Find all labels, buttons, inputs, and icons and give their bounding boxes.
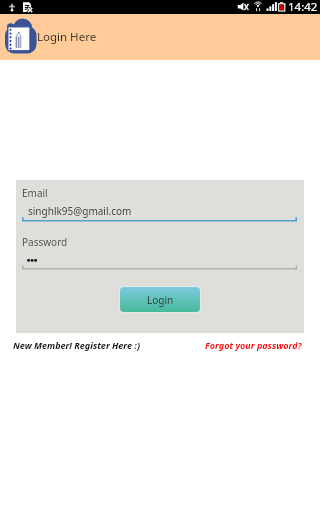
staticText: Login <box>147 293 174 307</box>
staticText: Password <box>22 235 68 249</box>
staticText: New Member! Register Here :) <box>13 339 140 351</box>
button[interactable]: New Member! Register Here :) <box>13 339 140 351</box>
staticText: 14:42 <box>288 0 318 13</box>
staticText: Forgot your password? <box>205 339 302 351</box>
other: App icon <box>5 18 38 58</box>
button[interactable] <box>22 233 298 270</box>
button[interactable] <box>22 184 298 222</box>
button[interactable]: Forgot your password? <box>205 339 302 351</box>
button[interactable]: Login <box>120 287 200 312</box>
staticText: Email <box>22 186 48 200</box>
staticText: singhlk95@gmail.com <box>28 204 132 218</box>
staticText: Login Here <box>37 29 97 45</box>
